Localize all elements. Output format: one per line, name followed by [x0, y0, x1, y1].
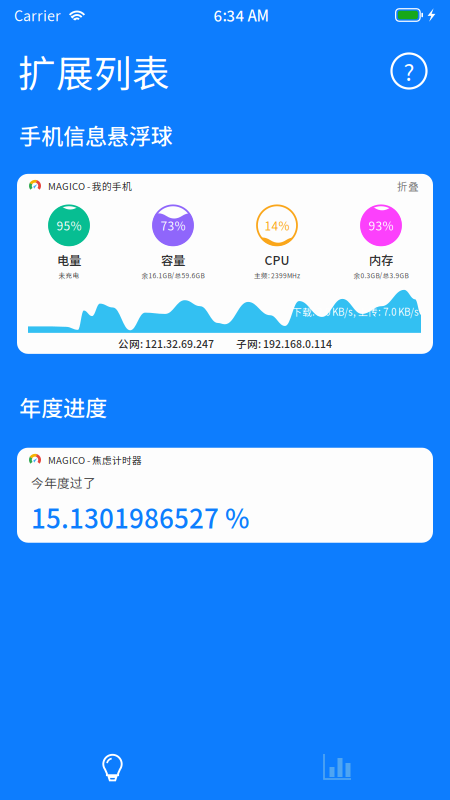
- staticText: 折叠: [397, 178, 419, 193]
- staticText: 扩展列表: [18, 44, 170, 98]
- staticText: 14%: [264, 217, 289, 234]
- staticText: 内存: [369, 251, 393, 269]
- staticText: 公网: 121.32.69.247: [118, 336, 214, 351]
- staticText: 93%: [368, 217, 393, 234]
- button[interactable]: Statistics: [306, 740, 368, 794]
- staticText: 容量: [161, 251, 185, 269]
- staticText: 手机信息悬浮球: [19, 119, 173, 151]
- staticText: 今年度过了: [31, 473, 96, 491]
- staticText: MAGICO - 我的手机: [48, 179, 132, 193]
- button[interactable]: 折叠: [394, 178, 422, 193]
- button[interactable]: Tips: [81, 740, 143, 794]
- staticText: ?: [403, 54, 414, 88]
- staticText: 73%: [160, 217, 185, 234]
- staticText: 未充电: [58, 270, 79, 280]
- staticText: 95%: [56, 217, 81, 234]
- staticText: 15.1301986527 %: [31, 498, 249, 536]
- staticText: 余16.1GB/总59.6GB: [141, 270, 204, 280]
- staticText: CPU: [264, 251, 289, 269]
- staticText: Carrier: [14, 5, 61, 25]
- staticText: MAGICO - 焦虑计时器: [48, 453, 142, 467]
- staticText: 6:34 AM: [213, 4, 268, 26]
- button[interactable]: Help: [386, 48, 432, 94]
- staticText: 电量: [57, 251, 81, 269]
- staticText: 子网: 192.168.0.114: [236, 336, 332, 351]
- staticText: 年度进度: [19, 391, 107, 423]
- staticText: 余0.3GB/总3.9GB: [353, 270, 408, 280]
- staticText: 下载: 2.0 KB/s, 上传: 7.0 KB/s: [292, 304, 419, 318]
- staticText: 主频: 2399MHz: [254, 270, 300, 280]
